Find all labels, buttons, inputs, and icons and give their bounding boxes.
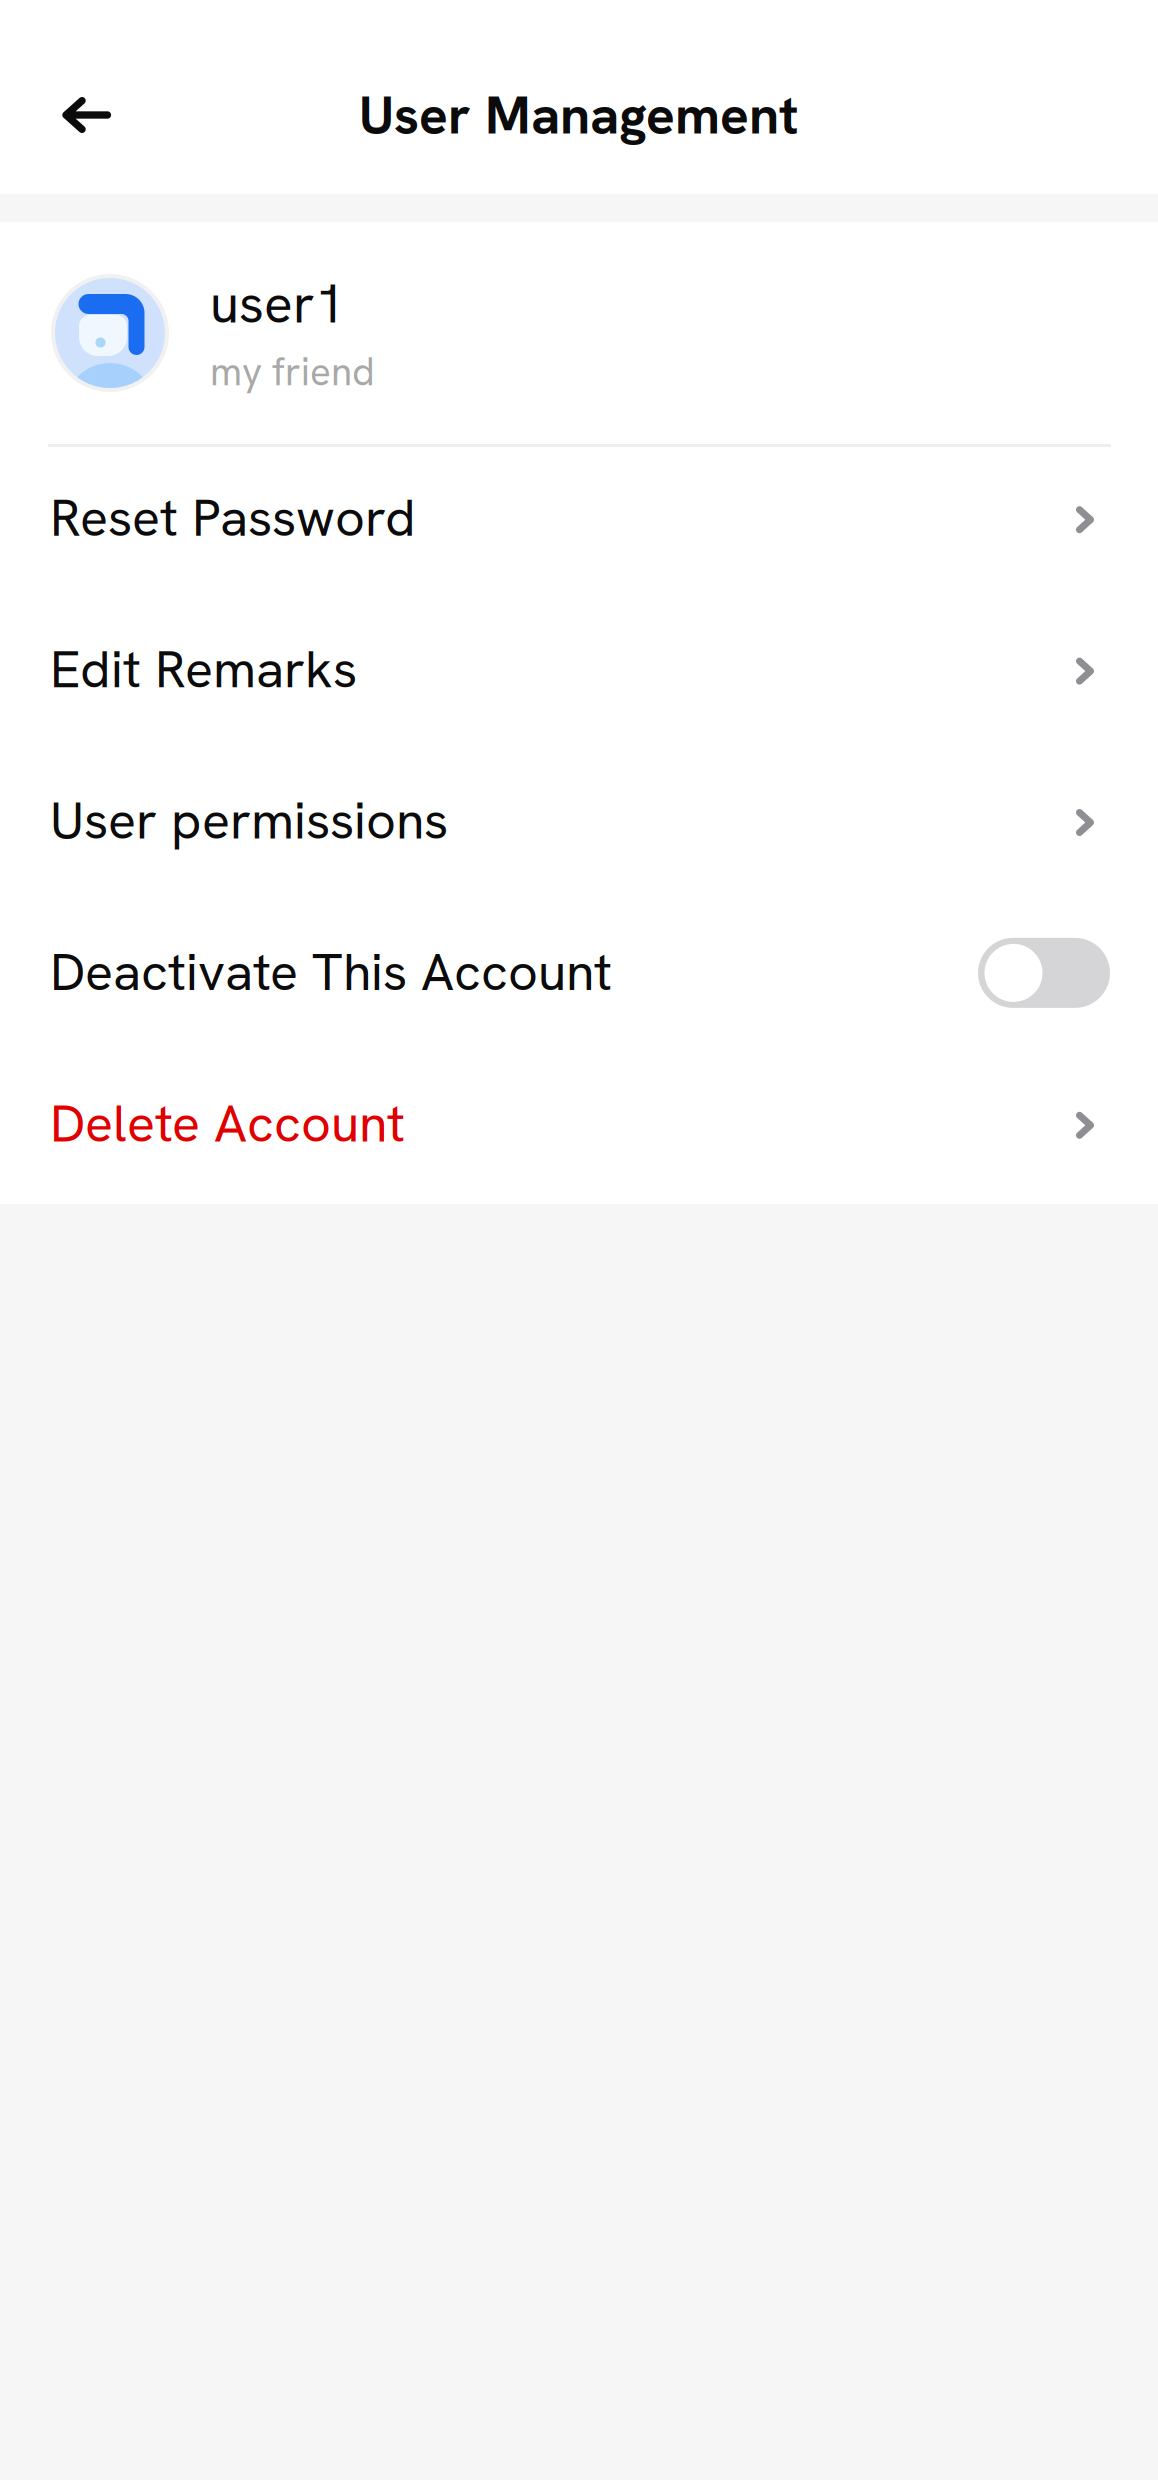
staticText: Edit Remarks [50, 635, 357, 703]
staticText: Delete Account [50, 1089, 405, 1157]
staticText: User permissions [50, 787, 448, 854]
staticText: Reset Password [50, 484, 416, 552]
staticText: User Management [359, 80, 799, 150]
button[interactable]: Delete Account [0, 1053, 1158, 1204]
button[interactable]: Back [62, 60, 172, 170]
button[interactable]: Deactivate This Account [0, 901, 1158, 1053]
staticText: my friend [210, 347, 375, 397]
staticText: Deactivate This Account [50, 938, 612, 1006]
button[interactable]: user1 [0, 222, 1158, 444]
button[interactable]: Reset Password [0, 447, 1158, 598]
staticText: user1 [210, 269, 345, 339]
button[interactable]: Edit Remarks [0, 598, 1158, 750]
button[interactable]: User permissions [0, 750, 1158, 901]
